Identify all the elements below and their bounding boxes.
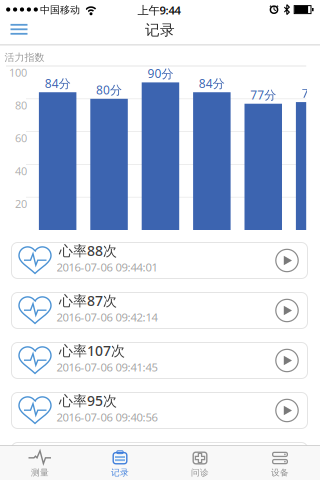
staticText: 心率107次 bbox=[59, 341, 125, 360]
staticText: 77分 bbox=[250, 86, 276, 103]
button[interactable]: 菜单 bbox=[0, 16, 38, 42]
button[interactable]: 心率87次 bbox=[11, 292, 308, 329]
button[interactable]: 播放 bbox=[275, 298, 299, 322]
staticText: 设备 bbox=[271, 467, 289, 478]
staticText: 心率88次 bbox=[59, 241, 117, 260]
staticText: 100 bbox=[9, 65, 27, 80]
staticText: 60 bbox=[15, 131, 27, 146]
button[interactable]: 播放 bbox=[275, 248, 299, 272]
staticText: 心率87次 bbox=[59, 291, 117, 310]
staticText: 2016-07-06 09:40:56 bbox=[56, 409, 157, 425]
staticText: 中国移动 bbox=[40, 4, 80, 16]
staticText: 问诊 bbox=[191, 467, 209, 478]
button[interactable]: 播放 bbox=[275, 398, 299, 422]
staticText: 上午9:44 bbox=[137, 2, 180, 18]
staticText: 记录 bbox=[111, 467, 129, 478]
button[interactable]: 播放 bbox=[275, 348, 299, 372]
staticText: 78分 bbox=[302, 85, 320, 101]
staticText: 2016-07-06 09:42:14 bbox=[56, 309, 157, 325]
button[interactable]: 心率107次 bbox=[11, 342, 308, 379]
staticText: 80分 bbox=[96, 82, 122, 98]
button[interactable]: 心率95次 bbox=[11, 392, 308, 429]
staticText: 80 bbox=[15, 98, 27, 113]
button[interactable]: 问诊 bbox=[160, 446, 240, 480]
staticText: 2016-07-06 09:44:01 bbox=[56, 259, 157, 275]
staticText: 活力指数 bbox=[4, 51, 44, 64]
staticText: 84分 bbox=[199, 75, 225, 91]
staticText: 40 bbox=[15, 163, 27, 178]
staticText: 20 bbox=[15, 196, 27, 211]
button[interactable]: 测量 bbox=[0, 446, 80, 480]
button[interactable]: 心率88次 bbox=[11, 242, 308, 279]
staticText: 84分 bbox=[45, 75, 71, 91]
staticText: 2016-07-06 09:41:45 bbox=[56, 359, 157, 375]
button[interactable]: 设备 bbox=[240, 446, 320, 480]
staticText: 心率95次 bbox=[59, 391, 117, 410]
staticText: 记录 bbox=[145, 21, 175, 39]
button[interactable]: 记录 bbox=[80, 446, 160, 480]
staticText: 测量 bbox=[31, 467, 49, 478]
staticText: 90分 bbox=[147, 65, 173, 81]
